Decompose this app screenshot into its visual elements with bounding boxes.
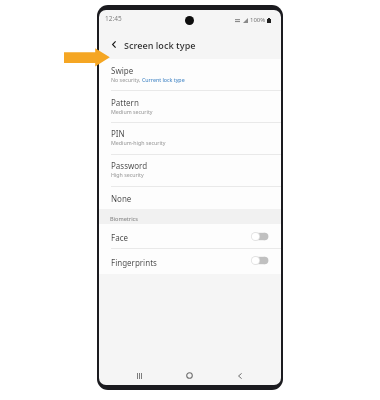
staticText: Medium-high security [111,139,166,146]
button[interactable]: Recents [131,365,148,385]
staticText: PIN [111,128,125,139]
button[interactable]: Home [181,365,198,385]
staticText: Fingerprints [111,257,157,268]
button[interactable] [99,248,281,272]
button[interactable] [99,186,281,209]
staticText: Swipe [111,65,134,76]
staticText: Pattern [111,97,139,108]
staticText: Password [111,160,148,171]
button[interactable] [99,224,281,248]
staticText: Face [111,232,128,243]
staticText: No security, [111,76,142,83]
button[interactable] [99,54,281,86]
button[interactable] [99,90,281,122]
staticText: Current lock type [142,76,185,83]
button[interactable] [99,154,281,186]
button[interactable] [99,122,281,154]
button[interactable]: Back [106,36,121,52]
staticText: High security [111,171,144,178]
staticText: 100% [250,16,266,24]
staticText: Biometrics [110,215,138,223]
staticText: Medium security [111,108,153,115]
staticText: Screen lock type [124,39,196,51]
staticText: None [111,193,132,204]
button[interactable]: Back [231,365,248,385]
staticText: 12:45 [105,14,122,23]
